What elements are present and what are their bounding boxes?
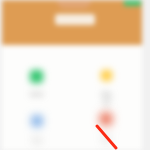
button[interactable]: Request (101, 70, 112, 111)
staticText: Scan (100, 133, 112, 147)
button[interactable]: Scan (100, 113, 112, 147)
button[interactable]: Send (30, 70, 43, 97)
button[interactable]: Status badge (124, 0, 141, 6)
button[interactable]: Pay (32, 116, 42, 143)
staticText: Request (101, 90, 112, 111)
